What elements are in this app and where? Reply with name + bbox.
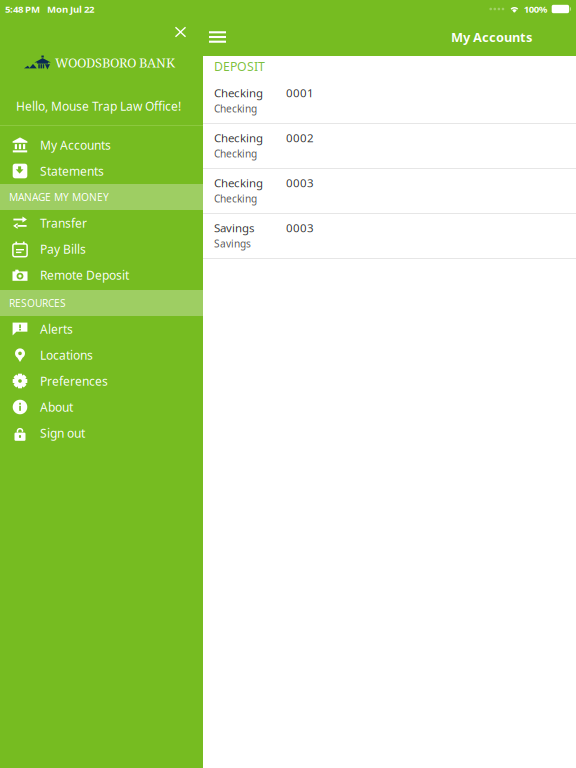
staticText: Locations — [40, 347, 93, 363]
staticText: Checking — [214, 175, 263, 191]
staticText: MANAGE MY MONEY — [9, 190, 109, 204]
staticText: 0001 — [286, 85, 314, 101]
button[interactable]: Remote Deposit — [0, 262, 203, 288]
staticText: Checking — [214, 192, 257, 205]
staticText: 0003 — [286, 220, 314, 236]
staticText: DEPOSIT — [214, 58, 265, 75]
staticText: Remote Deposit — [40, 267, 129, 283]
button[interactable]: Locations — [0, 342, 203, 368]
button[interactable]: About — [0, 394, 203, 420]
button[interactable]: Checking — [203, 169, 576, 214]
staticText: My Accounts — [451, 28, 532, 46]
button[interactable]: Sign out — [0, 420, 203, 446]
button[interactable]: Checking — [203, 124, 576, 169]
staticText: Savings — [214, 237, 251, 250]
staticText: Checking — [214, 147, 257, 160]
staticText: Preferences — [40, 373, 108, 389]
staticText: Statements — [40, 163, 104, 179]
button[interactable]: Savings — [203, 214, 576, 259]
staticText: Checking — [214, 85, 263, 101]
staticText: Checking — [214, 102, 257, 115]
staticText: Savings — [214, 220, 254, 236]
staticText: 5:48 PM — [5, 2, 40, 16]
staticText: About — [40, 399, 73, 415]
staticText: Hello, Mouse Trap Law Office! — [16, 98, 181, 114]
staticText: 0002 — [286, 130, 314, 146]
button[interactable]: Preferences — [0, 368, 203, 394]
staticText: RESOURCES — [9, 296, 66, 310]
staticText: Sign out — [40, 425, 85, 441]
button[interactable]: Menu — [203, 22, 238, 52]
staticText: 0003 — [286, 175, 314, 191]
staticText: 100% — [524, 2, 548, 16]
staticText: Mon Jul 22 — [47, 2, 94, 16]
button[interactable]: Close menu — [0, 18, 203, 46]
button[interactable]: My Accounts — [0, 132, 203, 158]
button[interactable]: Transfer — [0, 210, 203, 236]
staticText: Checking — [214, 130, 263, 146]
button[interactable]: Checking — [203, 79, 576, 124]
button[interactable]: Alerts — [0, 316, 203, 342]
staticText: WOODSBORO BANK — [55, 54, 175, 71]
staticText: My Accounts — [40, 137, 111, 153]
staticText: Pay Bills — [40, 241, 86, 257]
staticText: Transfer — [40, 215, 87, 231]
button[interactable]: Statements — [0, 158, 203, 184]
button[interactable]: Pay Bills — [0, 236, 203, 262]
staticText: Alerts — [40, 321, 73, 337]
